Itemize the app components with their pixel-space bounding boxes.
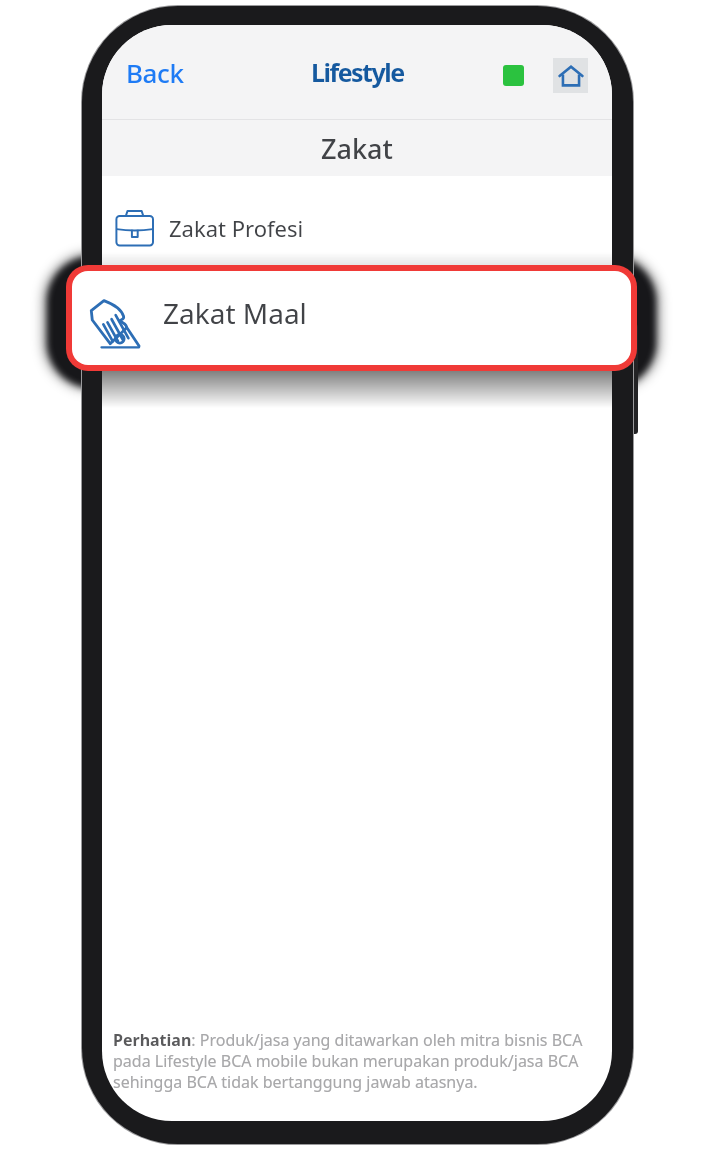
staticText: Zakat Maal bbox=[163, 294, 307, 332]
button[interactable]: Zakat Maal bbox=[66, 265, 637, 371]
button[interactable]: Back bbox=[102, 45, 204, 100]
staticText: Lifestyle bbox=[311, 55, 404, 89]
button[interactable]: Home bbox=[553, 58, 588, 93]
staticText: Perhatian: Produk/jasa yang ditawarkan o… bbox=[113, 1029, 590, 1093]
button[interactable]: Zakat Profesi bbox=[102, 176, 612, 280]
staticText: Zakat bbox=[321, 130, 393, 167]
staticText: Zakat Profesi bbox=[169, 213, 304, 243]
staticText: Back bbox=[126, 55, 184, 90]
button[interactable]: Status bbox=[503, 65, 524, 86]
